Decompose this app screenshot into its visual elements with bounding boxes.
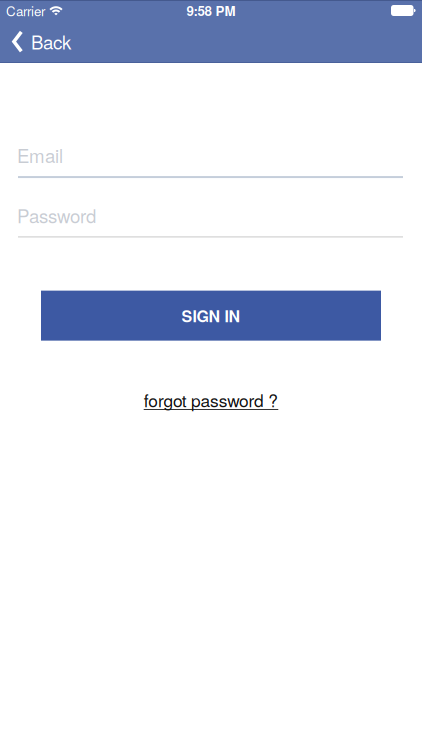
button[interactable]: forgot password ? xyxy=(144,388,278,412)
staticText: Password xyxy=(17,202,96,228)
button[interactable]: SIGN IN xyxy=(41,291,381,341)
button[interactable]: Back xyxy=(0,28,79,55)
staticText: 9:58 PM xyxy=(186,1,235,20)
staticText: Carrier xyxy=(6,1,45,20)
staticText: forgot password ? xyxy=(144,388,278,412)
button[interactable]: Password xyxy=(0,202,422,238)
staticText: Email xyxy=(17,142,63,168)
staticText: Back xyxy=(31,28,71,55)
staticText: SIGN IN xyxy=(181,304,240,327)
button[interactable]: Email xyxy=(0,142,422,178)
